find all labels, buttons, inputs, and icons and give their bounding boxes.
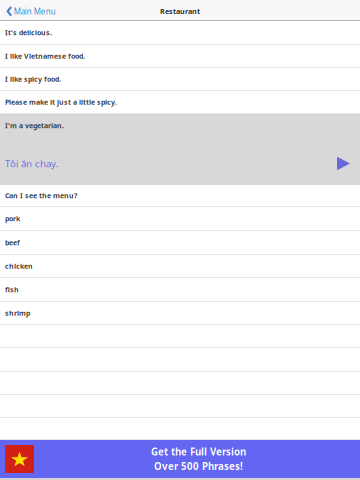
staticText: It's delicious. [5, 28, 52, 37]
button[interactable]: Get the Full Version [0, 440, 360, 478]
button[interactable]: beef [0, 231, 360, 255]
staticText: shrimp [5, 308, 30, 318]
staticText: Tôi ăn chay. [5, 157, 59, 170]
button[interactable]: Please make it just a little spicy. [0, 91, 360, 114]
staticText: Main Menu [14, 6, 56, 17]
button[interactable]: I like spicy food. [0, 68, 360, 91]
staticText: pork [5, 214, 20, 223]
button[interactable]: shrimp [0, 302, 360, 325]
button[interactable]: fish [0, 278, 360, 302]
staticText: I like Vietnamese food. [5, 51, 85, 61]
button[interactable]: Can I see the menu? [0, 185, 360, 207]
staticText: Please make it just a little spicy. [5, 97, 117, 107]
staticText: Can I see the menu? [5, 191, 77, 200]
button[interactable]: I'm a vegetarian. [0, 114, 360, 185]
staticText: Restaurant [160, 6, 200, 16]
staticText: beef [5, 238, 20, 247]
button[interactable]: pork [0, 207, 360, 231]
staticText: Over 500 Phrases! [154, 460, 243, 473]
button[interactable]: I like Vietnamese food. [0, 45, 360, 68]
staticText: I'm a vegetarian. [5, 121, 64, 130]
staticText: fish [5, 285, 19, 294]
button[interactable]: Main Menu [0, 1, 62, 20]
button[interactable]: It's delicious. [0, 21, 360, 45]
staticText: chicken [5, 261, 33, 271]
button[interactable]: chicken [0, 255, 360, 278]
staticText: I like spicy food. [5, 74, 61, 84]
staticText: Get the Full Version [151, 445, 246, 458]
